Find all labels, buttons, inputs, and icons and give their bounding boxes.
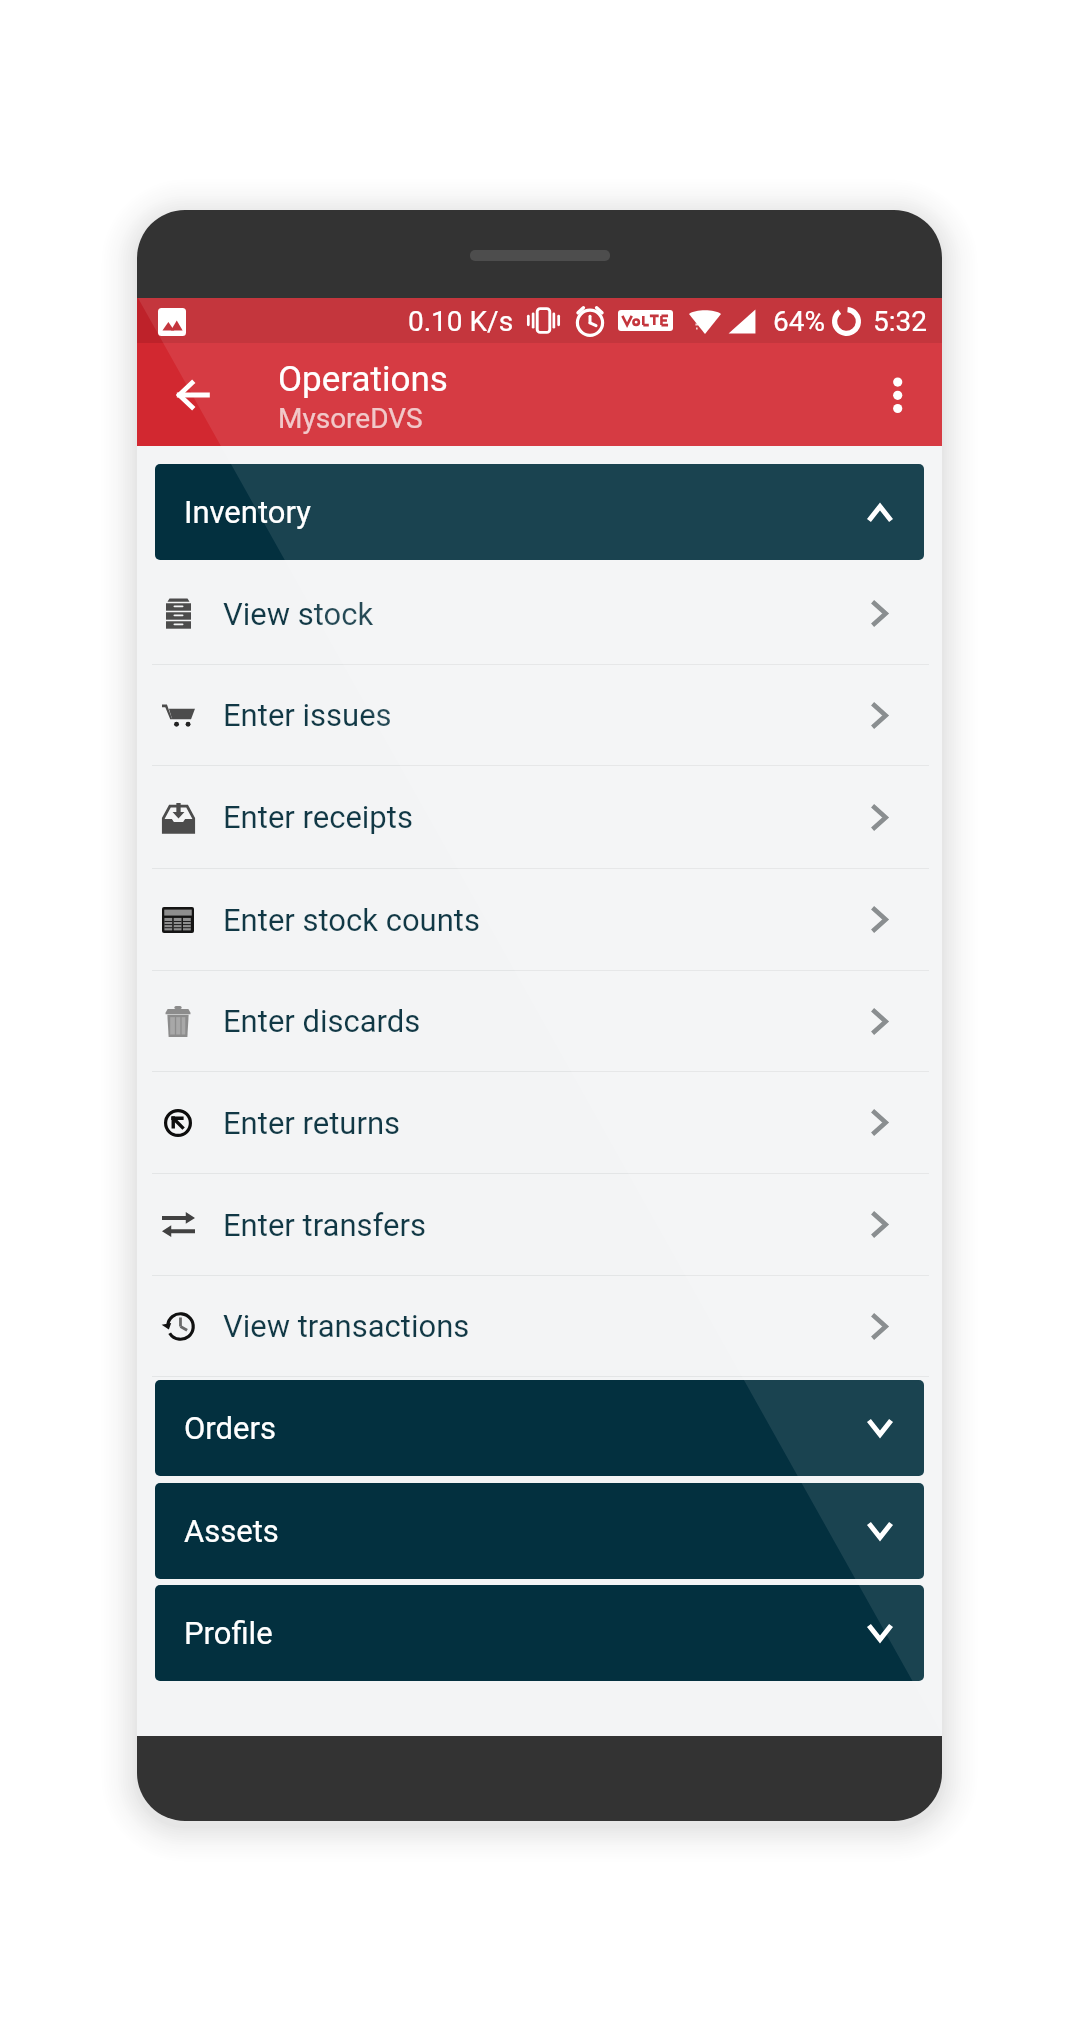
button[interactable]: Inventory — [155, 464, 924, 560]
staticText: Enter discards — [223, 1003, 421, 1039]
staticText: Inventory — [184, 494, 311, 530]
staticText: View stock — [223, 596, 374, 632]
staticText: Assets — [184, 1513, 279, 1549]
staticText: Enter returns — [223, 1105, 401, 1141]
staticText: 64% — [773, 305, 825, 338]
staticText: View transactions — [223, 1308, 470, 1344]
staticText: Enter receipts — [223, 799, 413, 835]
button[interactable]: Profile — [155, 1585, 924, 1681]
staticText: Enter transfers — [223, 1207, 426, 1243]
button[interactable]: Enter transfers — [137, 1174, 942, 1275]
staticText: Profile — [184, 1615, 273, 1651]
staticText: Orders — [184, 1410, 276, 1446]
button[interactable]: Enter stock counts — [137, 869, 942, 970]
staticText: Operations — [278, 359, 448, 400]
staticText: MysoreDVS — [278, 402, 423, 435]
staticText: Enter issues — [223, 697, 392, 733]
button[interactable]: Enter discards — [137, 971, 942, 1071]
button[interactable]: View stock — [137, 563, 942, 664]
button[interactable]: Orders — [155, 1380, 924, 1476]
staticText: 5:32 — [873, 305, 927, 338]
staticText: 0.10 K/s — [408, 305, 514, 338]
button[interactable]: Enter receipts — [137, 766, 942, 868]
button[interactable]: Back — [151, 354, 235, 434]
button[interactable]: Enter issues — [137, 665, 942, 765]
button[interactable]: Enter returns — [137, 1072, 942, 1173]
staticText: Enter stock counts — [223, 902, 480, 938]
button[interactable]: More options — [858, 355, 938, 435]
button[interactable]: View transactions — [137, 1276, 942, 1376]
button[interactable]: Assets — [155, 1483, 924, 1579]
